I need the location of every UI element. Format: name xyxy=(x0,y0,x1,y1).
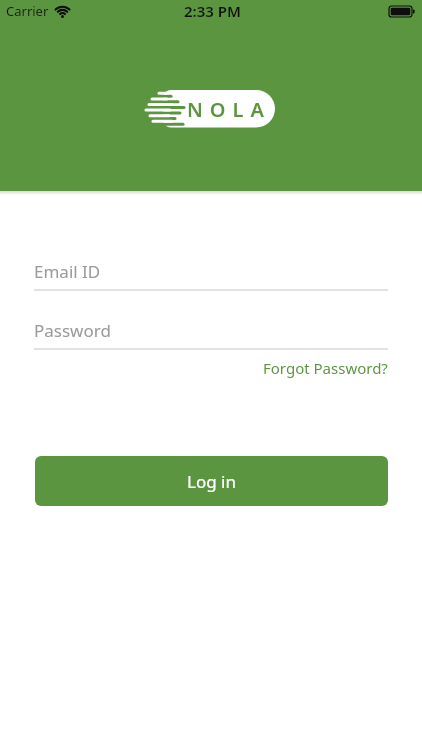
staticText: Carrier xyxy=(6,2,49,20)
button[interactable]: Log in xyxy=(35,456,388,506)
staticText: Password xyxy=(34,319,111,342)
button[interactable]: Password xyxy=(34,319,388,350)
button[interactable]: Email ID xyxy=(34,260,388,291)
staticText: Email ID xyxy=(34,260,101,283)
staticText: NOLA xyxy=(187,96,271,123)
button[interactable]: Forgot Password? xyxy=(263,358,388,378)
staticText: Log in xyxy=(187,470,236,493)
staticText: 2:33 PM xyxy=(184,1,241,21)
